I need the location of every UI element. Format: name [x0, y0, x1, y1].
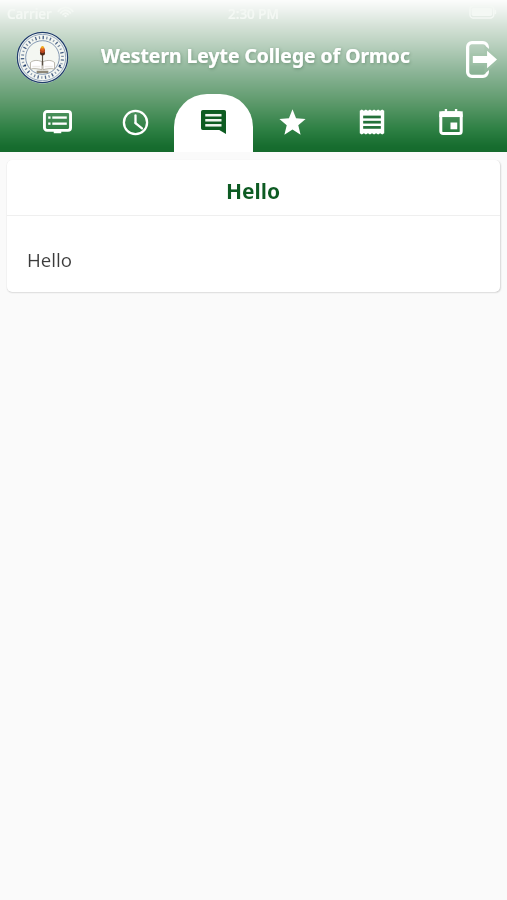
button[interactable]: Billing	[332, 92, 411, 152]
button[interactable]: Messages	[174, 92, 253, 152]
staticText: Hello	[27, 247, 73, 272]
staticText: Carrier	[7, 5, 52, 22]
button[interactable]: Favorites	[253, 92, 332, 152]
button[interactable]: Logout	[460, 38, 502, 80]
button[interactable]: College logo	[8, 23, 76, 91]
staticText: Hello	[226, 177, 281, 206]
button[interactable]: History	[96, 92, 174, 152]
button[interactable]: Dashboard	[18, 92, 96, 152]
button[interactable]: Calendar	[411, 92, 490, 152]
staticText: Western Leyte College of Ormoc	[101, 42, 410, 68]
staticText: 2:30 PM	[228, 5, 279, 22]
